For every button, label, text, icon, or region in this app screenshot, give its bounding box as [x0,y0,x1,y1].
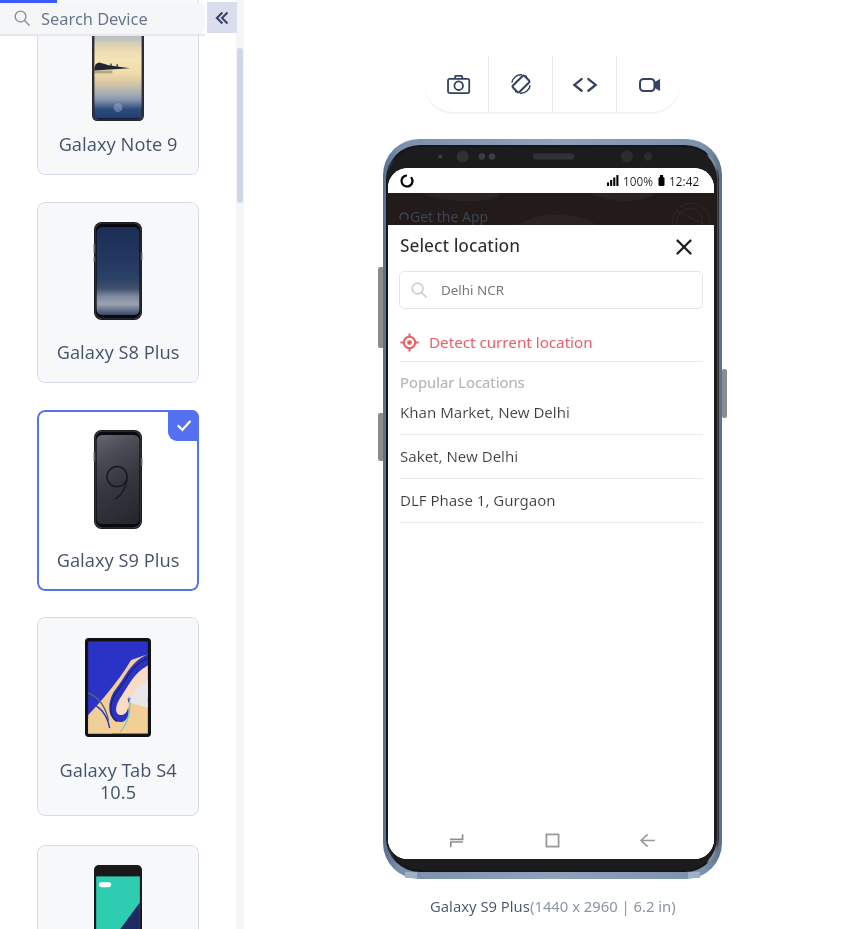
staticText: Galaxy Note 9 [37,132,199,157]
button[interactable]: Detect current location [388,327,714,357]
button[interactable]: Galaxy Note 9 [37,0,199,175]
button[interactable]: Recent apps [438,822,474,858]
button[interactable]: Collapse sidebar [207,2,237,33]
button[interactable]: DLF Phase 1, Gurgaon [388,483,714,516]
staticText: Get the App [410,207,489,225]
staticText: 12:42 [669,173,700,189]
button[interactable]: Pixel [37,845,199,929]
button[interactable]: Galaxy S8 Plus [37,202,199,383]
staticText: Galaxy S9 Plus [37,548,199,573]
button[interactable]: Screenshot [425,56,488,112]
button[interactable]: Search Device [0,2,205,34]
button[interactable]: Rotate screen [489,56,552,112]
button[interactable]: Galaxy S9 Plus [37,410,199,591]
staticText: Select location [400,234,520,258]
staticText: Galaxy Tab S4 10.5 [37,758,199,805]
staticText: Search Device [41,7,148,29]
staticText: Galaxy S8 Plus [37,340,199,365]
staticText: Saket, New Delhi [400,446,519,466]
button[interactable]: Dev tools [553,56,616,112]
staticText: Detect current location [429,332,593,353]
button[interactable]: Back [631,822,667,858]
button[interactable]: Delhi NCR [399,271,703,309]
staticText: Galaxy S9 Plus [430,896,530,916]
button[interactable]: Khan Market, New Delhi [388,395,714,428]
staticText: Khan Market, New Delhi [400,402,570,422]
button[interactable]: Close [669,232,699,262]
staticText: DLF Phase 1, Gurgaon [400,490,556,510]
button[interactable]: Saket, New Delhi [388,439,714,472]
staticText: Popular Locations [400,372,525,392]
button[interactable]: Home [534,822,570,858]
button[interactable]: Galaxy Tab S4 10.5 [37,617,199,816]
button[interactable]: Record video [617,56,680,112]
staticText: (1440 x 2960 | 6.2 in) [530,896,676,916]
staticText: Delhi NCR [441,281,504,299]
staticText: 100% [623,173,654,189]
